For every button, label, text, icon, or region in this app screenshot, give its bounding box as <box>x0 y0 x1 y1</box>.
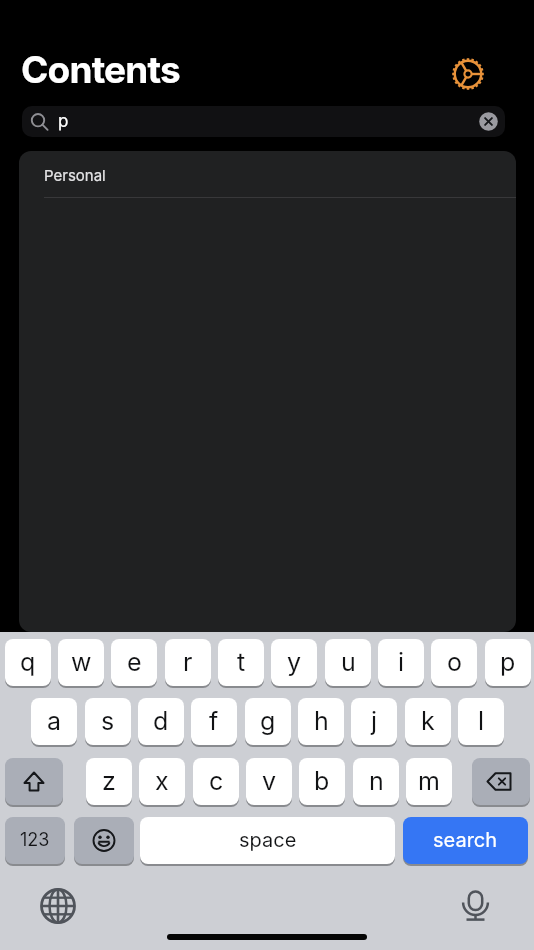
button[interactable] <box>5 758 63 805</box>
button[interactable] <box>455 884 496 925</box>
button[interactable]: n <box>353 758 399 805</box>
button[interactable]: i <box>378 639 424 686</box>
button[interactable]: t <box>218 639 264 686</box>
button[interactable]: a <box>31 698 77 745</box>
button[interactable]: o <box>431 639 477 686</box>
staticText: l <box>478 706 485 736</box>
button[interactable]: w <box>58 639 104 686</box>
staticText: z <box>102 766 116 796</box>
staticText: Contents <box>21 47 180 92</box>
staticText: y <box>287 647 302 677</box>
button[interactable]: z <box>86 758 132 805</box>
button[interactable]: e <box>111 639 157 686</box>
staticText: r <box>183 647 193 677</box>
button[interactable]: v <box>246 758 292 805</box>
button[interactable]: search <box>403 817 528 864</box>
staticText: g <box>260 706 276 736</box>
staticText: x <box>155 766 169 796</box>
staticText: n <box>369 766 384 796</box>
staticText: k <box>421 706 435 736</box>
staticText: p <box>58 111 69 132</box>
button[interactable]: 123 <box>5 817 65 864</box>
button[interactable]: k <box>405 698 451 745</box>
staticText: d <box>153 706 169 736</box>
staticText: m <box>418 766 440 796</box>
button[interactable]: y <box>271 639 317 686</box>
button[interactable]: c <box>193 758 239 805</box>
button[interactable]: g <box>245 698 291 745</box>
staticText: j <box>371 706 378 736</box>
staticText: search <box>433 828 498 852</box>
button[interactable]: r <box>165 639 211 686</box>
button[interactable] <box>449 55 487 93</box>
button[interactable]: p <box>485 639 531 686</box>
button[interactable] <box>38 886 78 926</box>
staticText: q <box>20 647 36 677</box>
staticText: u <box>341 647 356 677</box>
staticText: h <box>314 706 329 736</box>
button[interactable] <box>472 758 530 805</box>
button[interactable]: Personal <box>19 151 516 197</box>
button[interactable]: h <box>298 698 344 745</box>
button[interactable]: l <box>458 698 504 745</box>
staticText: space <box>239 828 297 852</box>
staticText: v <box>262 766 277 796</box>
button[interactable]: space <box>140 817 395 864</box>
staticText: i <box>398 647 405 677</box>
button[interactable]: b <box>299 758 345 805</box>
button[interactable] <box>74 817 134 864</box>
staticText: Personal <box>44 166 106 184</box>
staticText: a <box>47 706 62 736</box>
staticText: b <box>314 766 330 796</box>
button[interactable]: x <box>139 758 185 805</box>
staticText: w <box>71 647 92 677</box>
button[interactable]: u <box>325 639 371 686</box>
staticText: e <box>127 647 142 677</box>
button[interactable]: f <box>191 698 237 745</box>
staticText: s <box>101 706 115 736</box>
staticText: t <box>237 647 246 677</box>
staticText: 123 <box>20 829 50 851</box>
button[interactable]: d <box>138 698 184 745</box>
staticText: c <box>209 766 224 796</box>
button[interactable]: q <box>5 639 51 686</box>
button[interactable]: m <box>406 758 452 805</box>
button[interactable]: j <box>351 698 397 745</box>
button[interactable]: s <box>85 698 131 745</box>
staticText: p <box>500 647 516 677</box>
button[interactable]: p <box>22 106 505 137</box>
staticText: o <box>447 647 462 677</box>
staticText: f <box>209 706 219 736</box>
